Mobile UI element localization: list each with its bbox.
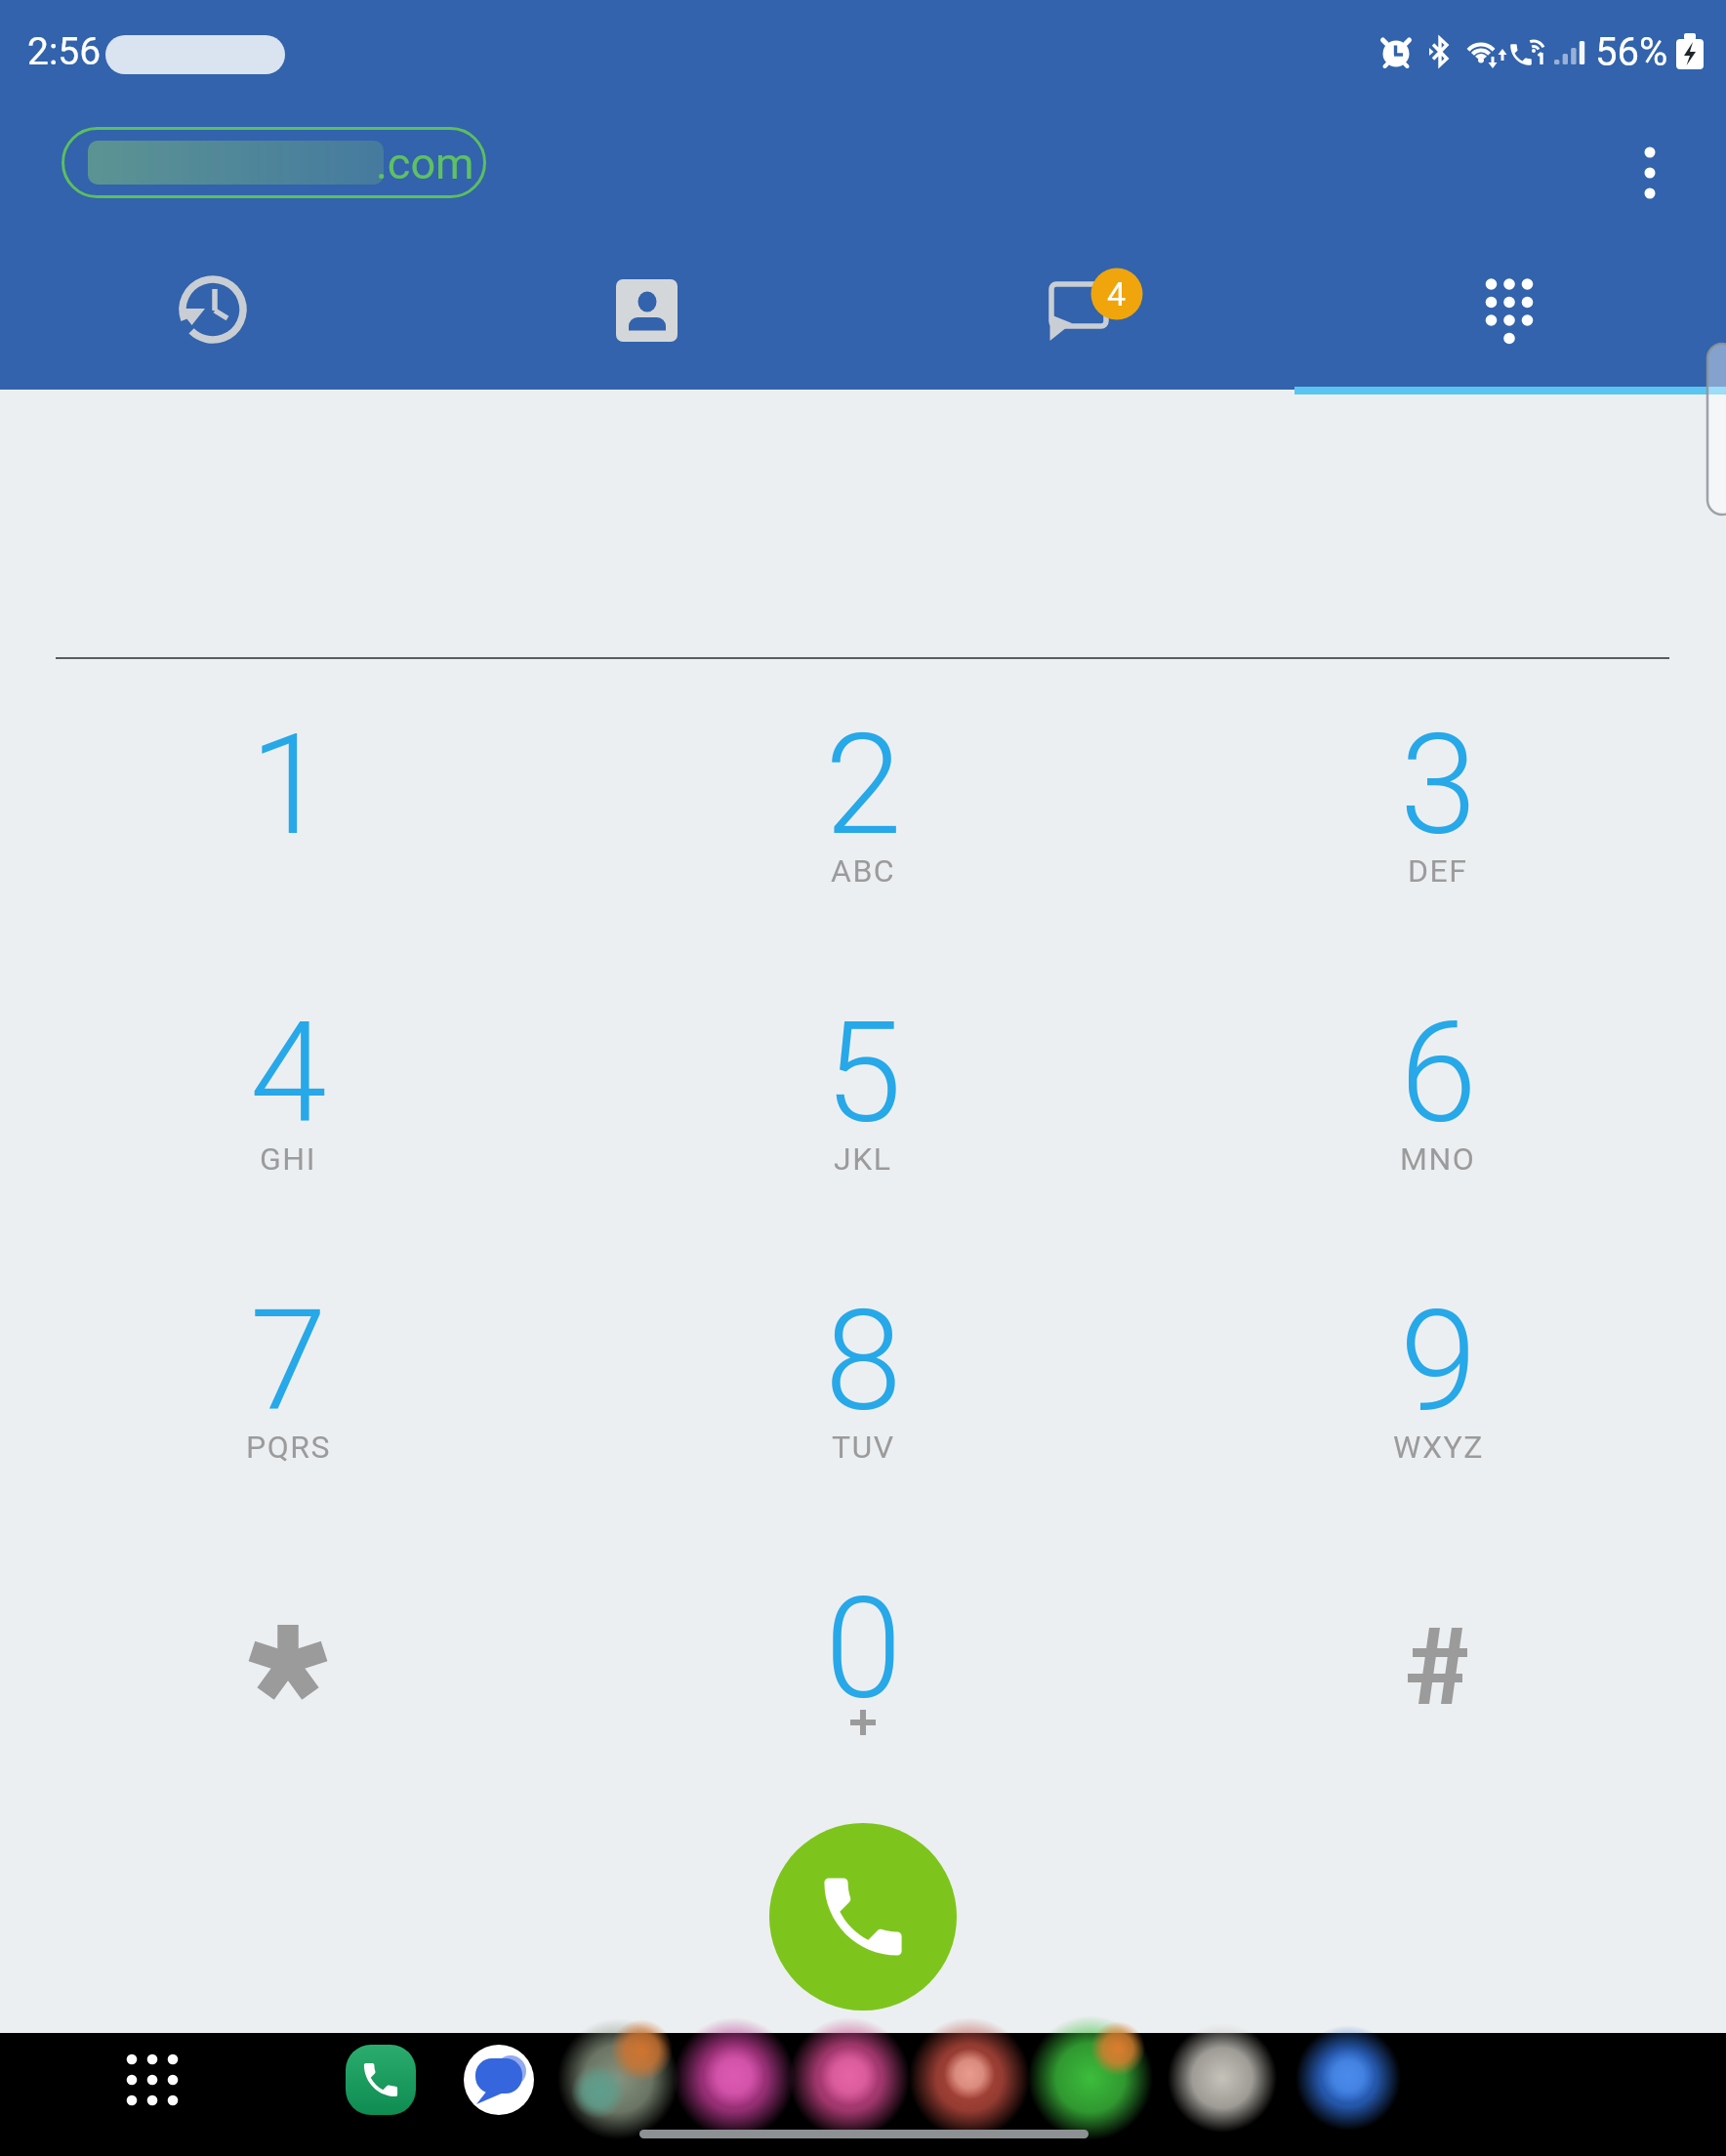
staticText: DEF (1408, 852, 1468, 890)
button[interactable] (464, 2045, 534, 2115)
button[interactable] (122, 1249, 454, 1493)
staticText: 4 (250, 992, 327, 1154)
button[interactable] (1272, 1542, 1604, 1786)
button[interactable] (62, 127, 486, 198)
staticText: 5 (825, 992, 902, 1154)
button[interactable] (346, 2045, 416, 2115)
staticText: 8 (825, 1280, 902, 1442)
staticText: 0 (825, 1568, 902, 1730)
button[interactable] (697, 1542, 1029, 1786)
button[interactable] (697, 673, 1029, 917)
staticText: .com (376, 138, 474, 189)
staticText: 2:56 (27, 29, 102, 74)
staticText: TUV (832, 1429, 895, 1466)
button[interactable] (769, 1823, 957, 2011)
button[interactable] (122, 1542, 454, 1786)
button[interactable] (0, 225, 431, 390)
button[interactable] (1616, 137, 1689, 210)
button[interactable] (431, 225, 863, 390)
staticText: 56% (1595, 29, 1668, 75)
button[interactable] (697, 1249, 1029, 1493)
button[interactable] (117, 2045, 187, 2115)
staticText: GHI (260, 1140, 316, 1178)
button[interactable] (1272, 961, 1604, 1205)
staticText: 7 (250, 1280, 327, 1442)
staticText: ABC (831, 852, 896, 890)
staticText: 9 (1400, 1280, 1477, 1442)
button[interactable] (1294, 225, 1726, 390)
staticText: MNO (1400, 1140, 1476, 1178)
staticText: PQRS (246, 1429, 331, 1466)
staticText: 3 (1400, 704, 1477, 866)
staticText: 6 (1400, 992, 1477, 1154)
button[interactable] (1272, 673, 1604, 917)
staticText: 1 (250, 704, 327, 866)
button[interactable] (122, 961, 454, 1205)
staticText: 2 (825, 704, 902, 866)
button[interactable] (863, 225, 1294, 390)
staticText: WXYZ (1393, 1429, 1484, 1466)
staticText: JKL (834, 1140, 892, 1178)
button[interactable] (122, 673, 454, 917)
staticText: 4 (1107, 274, 1127, 313)
button[interactable] (1272, 1249, 1604, 1493)
button[interactable] (697, 961, 1029, 1205)
